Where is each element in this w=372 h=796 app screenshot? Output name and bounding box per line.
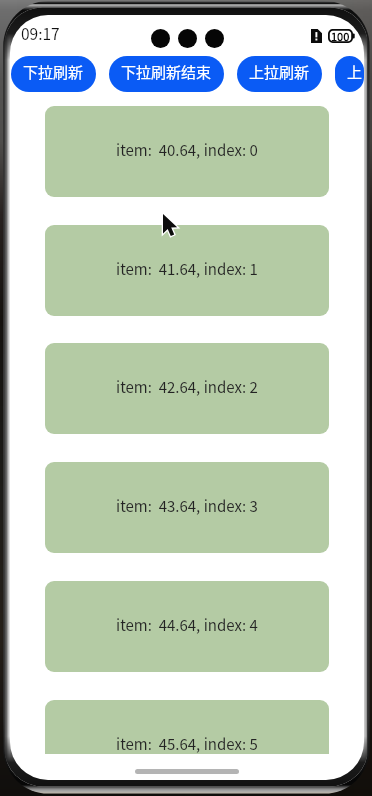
button[interactable]: item: 45.64, index: 5: [45, 700, 329, 754]
other: Alert: [311, 29, 322, 43]
button[interactable]: 下拉刷新: [11, 56, 96, 92]
staticText: 上拉刷新: [249, 61, 310, 83]
button[interactable]: item: 41.64, index: 1: [45, 225, 329, 316]
button[interactable]: 上拉刷新: [237, 56, 322, 92]
staticText: item: 44.64, index: 4: [116, 614, 258, 636]
staticText: item: 45.64, index: 5: [116, 733, 258, 754]
button[interactable]: item: 44.64, index: 4: [45, 581, 329, 672]
button[interactable]: 下拉刷新结束: [109, 56, 224, 92]
staticText: 上拉刷新结束: [347, 61, 352, 83]
button[interactable]: 上拉刷新结束: [335, 56, 364, 92]
staticText: item: 43.64, index: 3: [116, 495, 258, 517]
button[interactable]: item: 43.64, index: 3: [45, 462, 329, 553]
other: Battery 100 percent: [328, 28, 355, 44]
button[interactable]: item: 42.64, index: 2: [45, 343, 329, 434]
staticText: 09:17: [21, 22, 60, 44]
staticText: item: 40.64, index: 0: [116, 139, 258, 161]
staticText: 下拉刷新结束: [121, 61, 212, 83]
button[interactable]: item: 40.64, index: 0: [45, 106, 329, 197]
staticText: 100: [331, 28, 350, 44]
staticText: 下拉刷新: [23, 61, 84, 83]
staticText: item: 42.64, index: 2: [116, 376, 258, 398]
staticText: item: 41.64, index: 1: [116, 258, 258, 280]
